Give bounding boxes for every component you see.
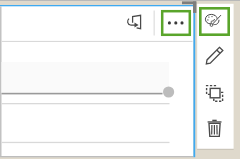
button[interactable]: Duplicate xyxy=(206,85,223,101)
button[interactable]: Palette xyxy=(199,7,230,36)
button[interactable]: Pencil xyxy=(206,47,223,64)
button[interactable]: More options xyxy=(161,10,191,36)
button[interactable]: Delete xyxy=(207,119,222,137)
button[interactable]: Export xyxy=(127,14,142,29)
